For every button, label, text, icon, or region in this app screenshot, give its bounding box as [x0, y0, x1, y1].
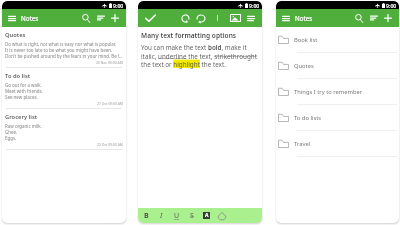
button[interactable]: Quotes: [2, 27, 126, 67]
button[interactable]: Sort: [97, 14, 105, 22]
staticText: Notes: [21, 14, 39, 22]
staticText: 22 Oct 09:00 AM: [97, 142, 123, 147]
button[interactable]: Grocery list: [2, 109, 126, 149]
staticText: Many text formatting options: [141, 31, 237, 40]
staticText: You can make the text bold, make it ital…: [141, 43, 259, 68]
staticText: To do list: [5, 72, 31, 80]
button[interactable]: U: [169, 209, 184, 222]
staticText: Meet with friends.: [5, 88, 43, 94]
button[interactable]: To do lists: [276, 105, 399, 130]
button[interactable]: Add note: [111, 14, 119, 22]
button[interactable]: Open navigation menu: [8, 15, 16, 22]
staticText: It is never too late to be what you migh…: [5, 47, 113, 53]
staticText: Raw organic milk.: [5, 123, 42, 129]
button[interactable]: Things I try to remember: [276, 79, 399, 104]
button[interactable]: Insert image: [230, 14, 241, 22]
button[interactable]: Save note: [145, 14, 156, 22]
button[interactable]: Undo: [181, 14, 190, 23]
button[interactable]: I: [154, 209, 169, 222]
button[interactable]: Quotes: [276, 53, 399, 78]
staticText: Quotes: [294, 62, 314, 70]
staticText: Book list: [294, 36, 318, 44]
button[interactable]: Book list: [276, 27, 399, 52]
button[interactable]: Sort: [370, 14, 378, 22]
staticText: A: [205, 212, 209, 219]
button[interactable]: Search: [82, 14, 91, 23]
staticText: Ghee.: [5, 129, 18, 135]
staticText: S: [190, 211, 194, 221]
staticText: To do lists: [294, 114, 322, 122]
button[interactable]: Redo: [196, 14, 206, 23]
staticText: Do what is right, not what is easy nor w…: [5, 41, 117, 47]
staticText: U: [174, 211, 180, 221]
button[interactable]: More options: [247, 15, 255, 22]
staticText: 9:00: [113, 2, 124, 9]
button[interactable]: Add note: [384, 14, 392, 22]
staticText: Things I try to remember: [294, 88, 363, 96]
staticText: Eggs.: [5, 135, 17, 141]
staticText: 20 Nov 09:00 AM: [96, 60, 123, 65]
staticText: Don't be pushed around by the fears in y…: [5, 53, 123, 59]
button[interactable]: Search: [355, 14, 364, 23]
staticText: Quotes: [5, 31, 26, 39]
button[interactable]: A: [199, 209, 214, 222]
staticText: B: [144, 211, 149, 221]
button[interactable]: To do list: [2, 68, 126, 108]
button[interactable]: B: [139, 209, 154, 222]
staticText: I: [160, 211, 163, 221]
staticText: 21 Oct 09:00 AM: [97, 101, 123, 106]
staticText: 9:00: [386, 2, 397, 9]
staticText: 9:00: [249, 2, 260, 9]
staticText: Notes: [295, 14, 313, 22]
staticText: Go out for a walk.: [5, 82, 42, 88]
button[interactable]: Open navigation menu: [282, 15, 290, 22]
staticText: Travel: [294, 140, 311, 148]
staticText: Grocery list: [5, 113, 38, 121]
button[interactable]: Travel: [276, 131, 399, 156]
button[interactable]: Text color: [214, 209, 229, 222]
staticText: See new places.: [5, 94, 38, 100]
button[interactable]: S: [184, 209, 199, 222]
